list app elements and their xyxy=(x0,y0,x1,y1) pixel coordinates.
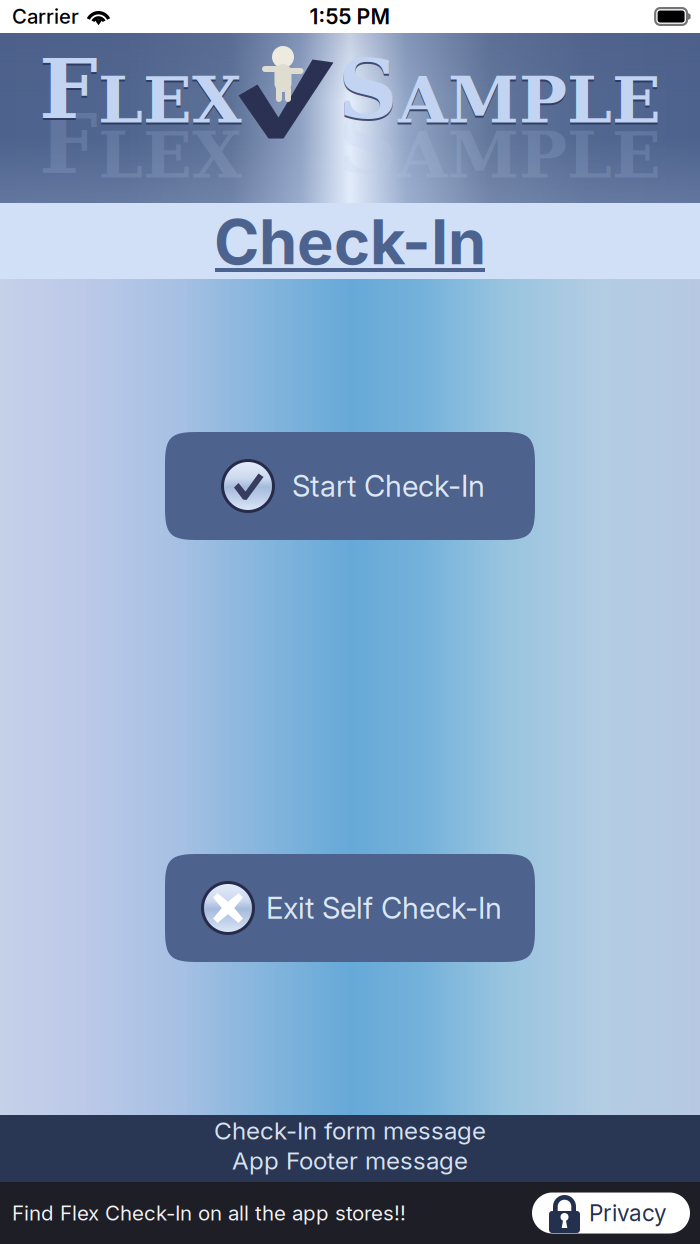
staticText: Start Check-In xyxy=(292,468,485,504)
button[interactable]: Exit Self Check-In xyxy=(165,854,535,962)
staticText: Exit Self Check-In xyxy=(266,890,502,926)
button[interactable]: Privacy xyxy=(532,1192,690,1233)
staticText: Find Flex Check-In on all the app stores… xyxy=(12,1201,406,1225)
staticText: AMPLE xyxy=(398,117,661,193)
staticText: S xyxy=(338,40,398,137)
staticText: LEX xyxy=(98,64,242,140)
staticText: App Footer message xyxy=(232,1146,468,1175)
staticText: LEX xyxy=(98,117,242,193)
staticText: S xyxy=(338,42,398,139)
staticText: Privacy xyxy=(589,1199,667,1227)
staticText: S xyxy=(338,95,398,192)
staticText: F xyxy=(39,42,98,139)
staticText: Carrier xyxy=(12,4,79,29)
staticText: AMPLE xyxy=(398,64,661,140)
button[interactable]: Start Check-In xyxy=(165,432,535,540)
staticText: AMPLE xyxy=(398,62,661,138)
staticText: 1:55 PM xyxy=(309,4,390,29)
staticText: LEX xyxy=(98,62,242,138)
staticText: F xyxy=(39,95,98,192)
staticText: Check-In form message xyxy=(214,1116,486,1145)
staticText: Check-In xyxy=(214,205,486,279)
staticText: F xyxy=(39,40,98,137)
